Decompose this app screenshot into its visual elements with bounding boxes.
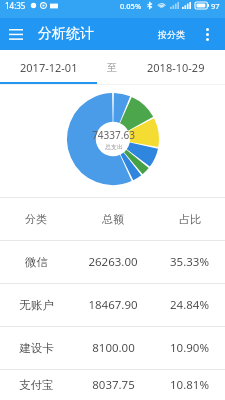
staticText: 按分类 (158, 29, 185, 40)
button[interactable]: Menu (0, 18, 32, 50)
staticText: 微信 (25, 255, 48, 269)
button[interactable]: 微信 (0, 241, 225, 283)
button[interactable]: 无账户 (0, 284, 225, 326)
staticText: 分析统计 (38, 25, 94, 43)
staticText: 18467.90 (88, 297, 138, 313)
staticText: 24.84% (170, 297, 209, 313)
staticText: 74337.63 (92, 128, 135, 142)
staticText: 10.90% (170, 340, 209, 356)
button[interactable]: 建设卡 (0, 327, 225, 369)
staticText: 97 (211, 1, 220, 11)
staticText: 占比 (179, 212, 201, 226)
staticText: 无账户 (19, 298, 54, 312)
staticText: 8100.00 (92, 340, 135, 356)
staticText: 26263.00 (88, 254, 138, 270)
staticText: 建设卡 (19, 341, 54, 355)
staticText: 2017-12-01 (20, 60, 78, 75)
staticText: 支付宝 (19, 378, 54, 392)
button[interactable]: More options (193, 20, 221, 48)
button[interactable]: 2018-10-29 (127, 50, 225, 84)
staticText: 至 (107, 61, 117, 74)
button[interactable]: 按分类 (152, 23, 191, 46)
staticText: 14:35 (5, 0, 26, 11)
staticText: 总支出 (105, 143, 123, 151)
staticText: 总额 (102, 212, 124, 226)
staticText: 35.33% (170, 254, 209, 270)
staticText: 分类 (25, 212, 47, 226)
button[interactable]: 2017-12-01 (0, 50, 97, 84)
staticText: 8037.75 (92, 377, 135, 393)
staticText: 0.05% (120, 1, 142, 11)
staticText: 10.81% (170, 377, 209, 393)
staticText: 2018-10-29 (147, 60, 205, 75)
button[interactable]: 支付宝 (0, 370, 225, 400)
